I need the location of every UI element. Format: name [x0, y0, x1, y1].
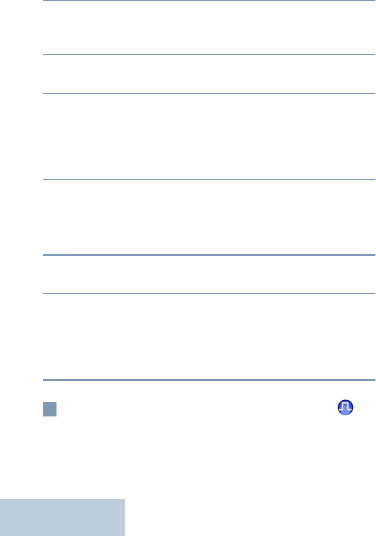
button[interactable]: Signal: [338, 400, 353, 415]
